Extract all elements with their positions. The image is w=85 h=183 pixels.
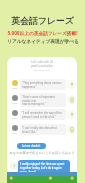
- staticText: 5,000以上の英会話フレーズ搭載!: [7, 30, 78, 36]
- staticText: あなたの英語で伝えたいことを話してみよう: [7, 151, 77, 155]
- button[interactable]: Record: [10, 162, 18, 170]
- staticText: "How's some of important matter into how…: [22, 95, 64, 105]
- button[interactable]: I really enjoyed the time we spent toget…: [20, 162, 68, 174]
- button[interactable]: name: [9, 77, 76, 92]
- staticText: name: [12, 87, 18, 90]
- button[interactable]: Play audio: [67, 125, 76, 134]
- staticText: fraction's right: [7, 68, 77, 71]
- button[interactable]: Play audio: [67, 95, 76, 104]
- staticText: part's out who: [7, 64, 77, 68]
- button[interactable]: Record: [67, 80, 76, 89]
- staticText: "I still remember the way of the person …: [22, 111, 62, 118]
- button[interactable]: name: [9, 122, 76, 137]
- staticText: "They are talking about various happines…: [22, 81, 62, 88]
- staticText: リアルなネイティブ表現が学べる: [7, 38, 79, 44]
- staticText: I really enjoyed the time we spent toget…: [20, 162, 65, 174]
- staticText: Let me check it: [22, 144, 41, 148]
- button[interactable]: Let me check it: [17, 143, 46, 149]
- staticText: Let's talk with AI: [7, 60, 77, 64]
- staticText: name: [12, 132, 18, 135]
- button[interactable]: Record: [67, 110, 76, 119]
- staticText: "I can't really describe what kinds I li…: [22, 126, 57, 133]
- button[interactable]: name: [9, 107, 76, 122]
- staticText: 英会話フレーズ: [11, 15, 74, 26]
- button[interactable]: name: [9, 92, 76, 107]
- staticText: name: [12, 117, 18, 120]
- staticText: name: [12, 102, 18, 105]
